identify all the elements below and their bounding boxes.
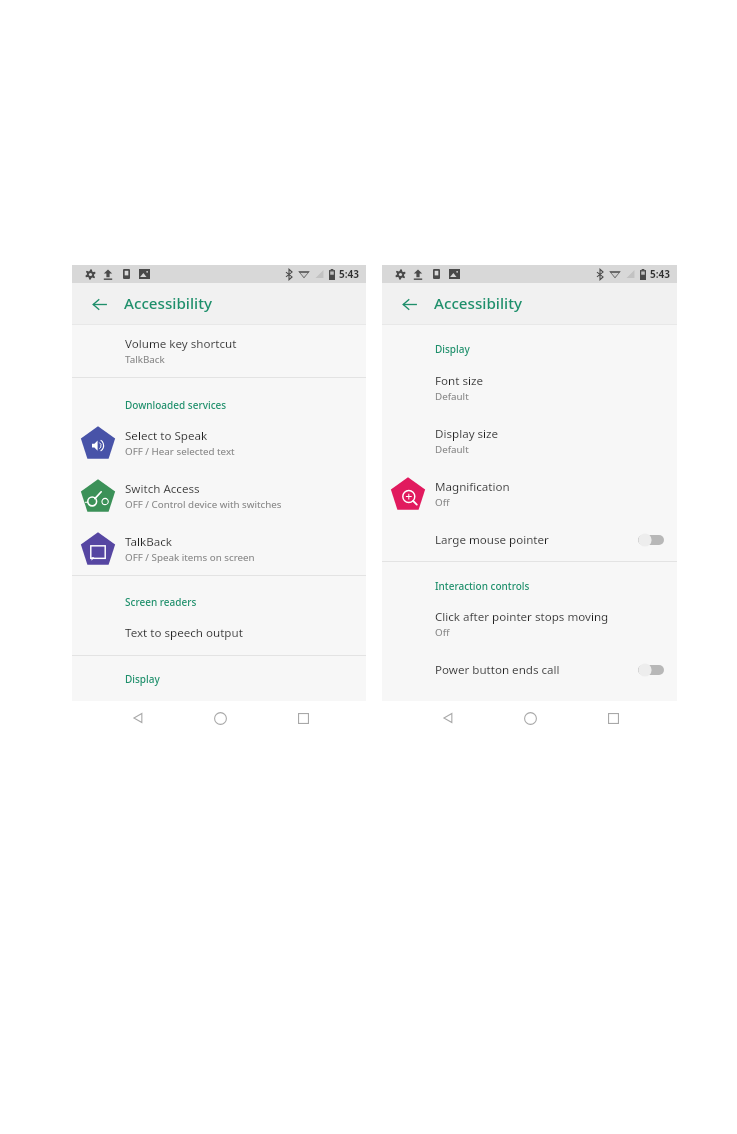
button[interactable]: Back — [434, 701, 462, 735]
staticText: Screen readers — [125, 595, 197, 609]
staticText: TalkBack — [125, 534, 173, 550]
staticText: Volume key shortcut — [125, 336, 237, 352]
staticText: Magnification — [435, 479, 510, 495]
staticText: Click after pointer stops moving — [435, 609, 609, 625]
staticText: Font size — [435, 373, 483, 389]
staticText: Power button ends call — [435, 662, 560, 678]
staticText: Default — [435, 443, 469, 456]
staticText: Accessibility — [124, 293, 212, 314]
staticText: Interaction controls — [435, 579, 530, 593]
button[interactable]: Toggle setting — [637, 529, 669, 551]
staticText: Select to Speak — [125, 428, 208, 444]
staticText: Text to speech output — [125, 625, 243, 641]
button[interactable]: Home — [206, 701, 234, 735]
button[interactable]: Volume key shortcut — [72, 328, 366, 362]
button[interactable]: Home — [516, 701, 544, 735]
button[interactable]: Display size — [382, 418, 677, 452]
staticText: TalkBack — [125, 353, 165, 366]
staticText: Accessibility — [434, 293, 522, 314]
staticText: Off — [435, 496, 450, 509]
button[interactable]: TalkBack — [72, 526, 366, 560]
button[interactable]: Navigate up — [396, 291, 422, 317]
staticText: Default — [435, 390, 469, 403]
button[interactable]: Recent apps — [289, 701, 317, 735]
button[interactable]: Toggle setting — [637, 659, 669, 681]
button[interactable]: Click after pointer stops moving — [382, 601, 677, 635]
button[interactable]: Magnification — [382, 471, 677, 505]
staticText: Switch Access — [125, 481, 200, 497]
staticText: Display — [125, 672, 160, 686]
button[interactable]: Text to speech output — [72, 617, 366, 645]
staticText: OFF / Speak items on screen — [125, 551, 255, 564]
staticText: OFF / Hear selected text — [125, 445, 235, 458]
staticText: 5:43 — [650, 267, 670, 281]
button[interactable]: Font size — [382, 365, 677, 399]
staticText: Off — [435, 626, 450, 639]
staticText: OFF / Control device with switches — [125, 498, 282, 511]
button[interactable]: Switch Access — [72, 473, 366, 507]
button[interactable]: Large mouse pointer — [382, 524, 677, 552]
staticText: Downloaded services — [125, 398, 227, 412]
button[interactable]: Select to Speak — [72, 420, 366, 454]
staticText: Display — [435, 342, 470, 356]
button[interactable]: Power button ends call — [382, 654, 677, 682]
staticText: 5:43 — [339, 267, 359, 281]
button[interactable]: Back — [124, 701, 152, 735]
staticText: Display size — [435, 426, 499, 442]
button[interactable]: Navigate up — [86, 291, 112, 317]
button[interactable]: Recent apps — [599, 701, 627, 735]
staticText: Large mouse pointer — [435, 532, 549, 548]
